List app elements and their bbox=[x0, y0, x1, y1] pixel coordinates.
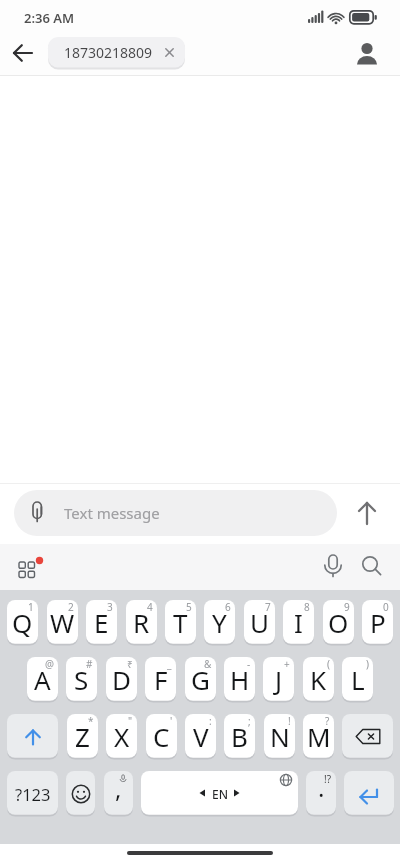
staticText: M bbox=[307, 719, 331, 754]
button[interactable]: 18730218809 bbox=[48, 37, 185, 68]
staticText: O bbox=[328, 605, 349, 640]
staticText: - bbox=[247, 657, 251, 671]
button[interactable]: J bbox=[263, 657, 294, 702]
button[interactable]: ?123 bbox=[7, 771, 58, 816]
button[interactable]: W bbox=[47, 600, 78, 645]
staticText: ( bbox=[327, 657, 330, 671]
staticText: 8 bbox=[304, 600, 310, 614]
staticText: & bbox=[204, 657, 212, 671]
button[interactable]: V bbox=[185, 714, 216, 759]
button[interactable]: R bbox=[126, 600, 157, 645]
staticText: P bbox=[370, 605, 386, 640]
button[interactable]: , bbox=[104, 771, 133, 816]
staticText: EN bbox=[212, 786, 228, 802]
staticText: C bbox=[153, 719, 170, 754]
button[interactable]: S bbox=[66, 657, 97, 702]
button[interactable]: L bbox=[342, 657, 373, 702]
staticText: 4 bbox=[147, 600, 153, 614]
button[interactable]: F bbox=[145, 657, 176, 702]
staticText: 9 bbox=[344, 600, 350, 614]
button[interactable]: X bbox=[106, 714, 137, 759]
staticText: 2:36 AM bbox=[24, 9, 75, 27]
staticText: X bbox=[114, 719, 130, 754]
button[interactable]: I bbox=[283, 600, 314, 645]
button[interactable]: . bbox=[306, 771, 336, 816]
button[interactable]: G bbox=[185, 657, 216, 702]
button[interactable]: C bbox=[146, 714, 177, 759]
staticText: 1 bbox=[28, 600, 34, 614]
staticText: K bbox=[310, 662, 327, 697]
staticText: N bbox=[270, 719, 290, 754]
staticText: + bbox=[284, 657, 290, 671]
button[interactable] bbox=[356, 550, 388, 584]
button[interactable] bbox=[6, 38, 40, 68]
staticText: " bbox=[128, 714, 133, 728]
staticText: # bbox=[86, 657, 93, 671]
button[interactable]: D bbox=[106, 657, 137, 702]
staticText: Text message bbox=[64, 503, 160, 523]
button[interactable]: N bbox=[264, 714, 295, 759]
button[interactable] bbox=[344, 771, 394, 816]
button[interactable]: U bbox=[244, 600, 275, 645]
staticText: I bbox=[294, 605, 303, 640]
staticText: 3 bbox=[107, 600, 113, 614]
staticText: 6 bbox=[225, 600, 231, 614]
staticText: ) bbox=[366, 657, 369, 671]
staticText: 7 bbox=[265, 600, 271, 614]
button[interactable]: EN bbox=[141, 771, 298, 816]
staticText: Q bbox=[12, 605, 33, 640]
staticText: A bbox=[34, 662, 51, 697]
staticText: V bbox=[193, 719, 209, 754]
staticText: R bbox=[133, 605, 150, 640]
button[interactable] bbox=[348, 494, 386, 532]
button[interactable] bbox=[342, 714, 393, 759]
button[interactable] bbox=[318, 550, 348, 584]
button[interactable] bbox=[350, 36, 384, 70]
button[interactable]: P bbox=[362, 600, 393, 645]
staticText: ! bbox=[288, 714, 291, 728]
staticText: W bbox=[50, 605, 75, 640]
button[interactable]: Y bbox=[204, 600, 235, 645]
staticText: 2 bbox=[68, 600, 74, 614]
button[interactable]: T bbox=[165, 600, 196, 645]
staticText: ; bbox=[248, 714, 251, 728]
button[interactable]: A bbox=[27, 657, 58, 702]
staticText: . bbox=[318, 771, 325, 804]
staticText: D bbox=[112, 662, 131, 697]
staticText: @ bbox=[45, 657, 54, 671]
staticText: , bbox=[115, 772, 122, 805]
staticText: Z bbox=[75, 719, 90, 754]
staticText: : bbox=[209, 714, 212, 728]
staticText: !? bbox=[324, 772, 332, 786]
button[interactable]: Z bbox=[67, 714, 98, 759]
staticText: S bbox=[74, 662, 89, 697]
staticText: 5 bbox=[186, 600, 192, 614]
button[interactable] bbox=[10, 551, 48, 585]
staticText: ' bbox=[170, 714, 173, 728]
staticText: ₹ bbox=[127, 657, 133, 671]
staticText: ? bbox=[325, 714, 330, 728]
staticText: E bbox=[94, 605, 109, 640]
button[interactable]: Q bbox=[7, 600, 38, 645]
button[interactable]: K bbox=[303, 657, 334, 702]
button[interactable]: O bbox=[323, 600, 354, 645]
staticText: G bbox=[191, 662, 210, 697]
staticText: F bbox=[154, 662, 168, 697]
button[interactable]: E bbox=[86, 600, 117, 645]
staticText: U bbox=[250, 605, 270, 640]
staticText: Y bbox=[212, 605, 227, 640]
button[interactable]: M bbox=[303, 714, 334, 759]
staticText: _ bbox=[167, 657, 172, 671]
button[interactable]: Text message bbox=[14, 490, 337, 536]
staticText: T bbox=[173, 605, 188, 640]
staticText: B bbox=[231, 719, 248, 754]
button[interactable] bbox=[66, 771, 95, 816]
button[interactable] bbox=[7, 714, 58, 759]
button[interactable]: B bbox=[224, 714, 255, 759]
staticText: ?123 bbox=[15, 783, 51, 805]
staticText: H bbox=[230, 662, 250, 697]
staticText: * bbox=[88, 714, 94, 728]
staticText: L bbox=[351, 662, 365, 697]
button[interactable]: H bbox=[224, 657, 255, 702]
staticText: J bbox=[275, 662, 283, 697]
